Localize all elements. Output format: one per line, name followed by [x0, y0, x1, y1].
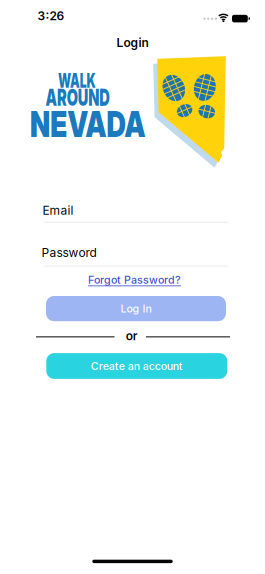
staticText: Password [41, 246, 96, 260]
staticText: Forgot Password? [88, 273, 181, 286]
staticText: NEVADA [11, 103, 165, 145]
staticText: or [126, 329, 138, 343]
staticText: Login [116, 36, 148, 50]
button[interactable]: Create an account [46, 353, 227, 379]
button[interactable]: Forgot Password? [88, 273, 181, 286]
staticText: AROUND [25, 83, 130, 111]
staticText: 3:26 [37, 9, 64, 23]
button[interactable]: Log In [46, 296, 226, 321]
staticText: WALK [46, 69, 108, 92]
staticText: Log In [120, 302, 151, 315]
staticText: Email [42, 203, 73, 218]
staticText: Create an account [91, 360, 183, 372]
